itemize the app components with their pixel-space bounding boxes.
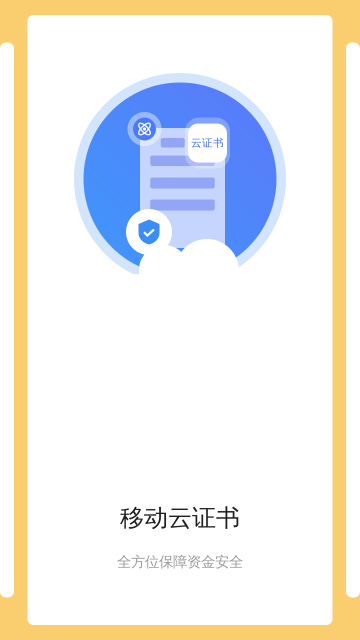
staticText: 移动云证书: [120, 503, 240, 533]
staticText: 全方位保障资金安全: [117, 553, 243, 571]
staticText: 云证书: [191, 136, 224, 149]
